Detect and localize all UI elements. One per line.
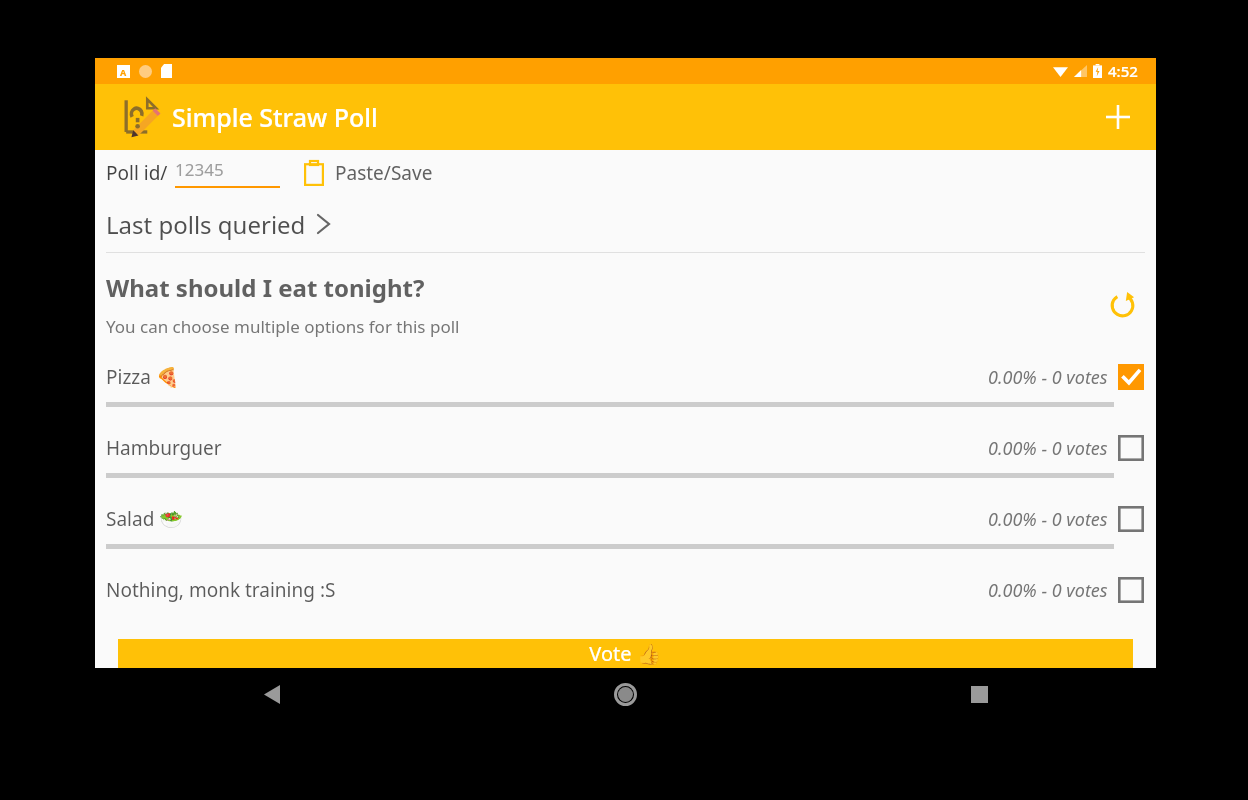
button[interactable]: Pizza 🍕 xyxy=(95,362,1156,392)
button[interactable]: Vote 👍 xyxy=(118,639,1133,668)
button[interactable]: Last polls queried xyxy=(95,196,1156,252)
staticText: 0.00% - 0 votes xyxy=(988,507,1108,532)
staticText: Salad 🥗 xyxy=(106,506,988,532)
staticText: Pizza 🍕 xyxy=(106,364,988,390)
staticText: Nothing, monk training :S xyxy=(106,577,988,603)
staticText: 12345 xyxy=(175,158,224,181)
button[interactable]: Home xyxy=(448,670,802,718)
staticText: A xyxy=(120,66,127,78)
staticText: You can choose multiple options for this… xyxy=(106,315,460,338)
staticText: Poll id/ xyxy=(106,160,168,186)
button[interactable]: Refresh poll xyxy=(1100,283,1144,327)
staticText: Paste/Save xyxy=(335,160,433,186)
staticText: 0.00% - 0 votes xyxy=(988,578,1108,603)
staticText: What should I eat tonight? xyxy=(106,271,425,304)
button[interactable]: Back xyxy=(95,670,448,718)
button[interactable]: Recent apps xyxy=(802,670,1156,718)
button[interactable]: Add poll xyxy=(1094,93,1142,141)
button[interactable]: Nothing, monk training :S xyxy=(95,575,1156,605)
button[interactable]: Hamburguer xyxy=(95,433,1156,463)
staticText: Hamburguer xyxy=(106,435,988,461)
staticText: Simple Straw Poll xyxy=(172,100,378,134)
staticText: 4:52 xyxy=(1108,61,1138,81)
staticText: Vote 👍 xyxy=(589,640,662,667)
button[interactable]: Salad 🥗 xyxy=(95,504,1156,534)
staticText: 0.00% - 0 votes xyxy=(988,436,1108,461)
staticText: 0.00% - 0 votes xyxy=(988,365,1108,390)
staticText: Last polls queried xyxy=(106,208,306,241)
button[interactable]: Paste/Save xyxy=(302,156,435,190)
